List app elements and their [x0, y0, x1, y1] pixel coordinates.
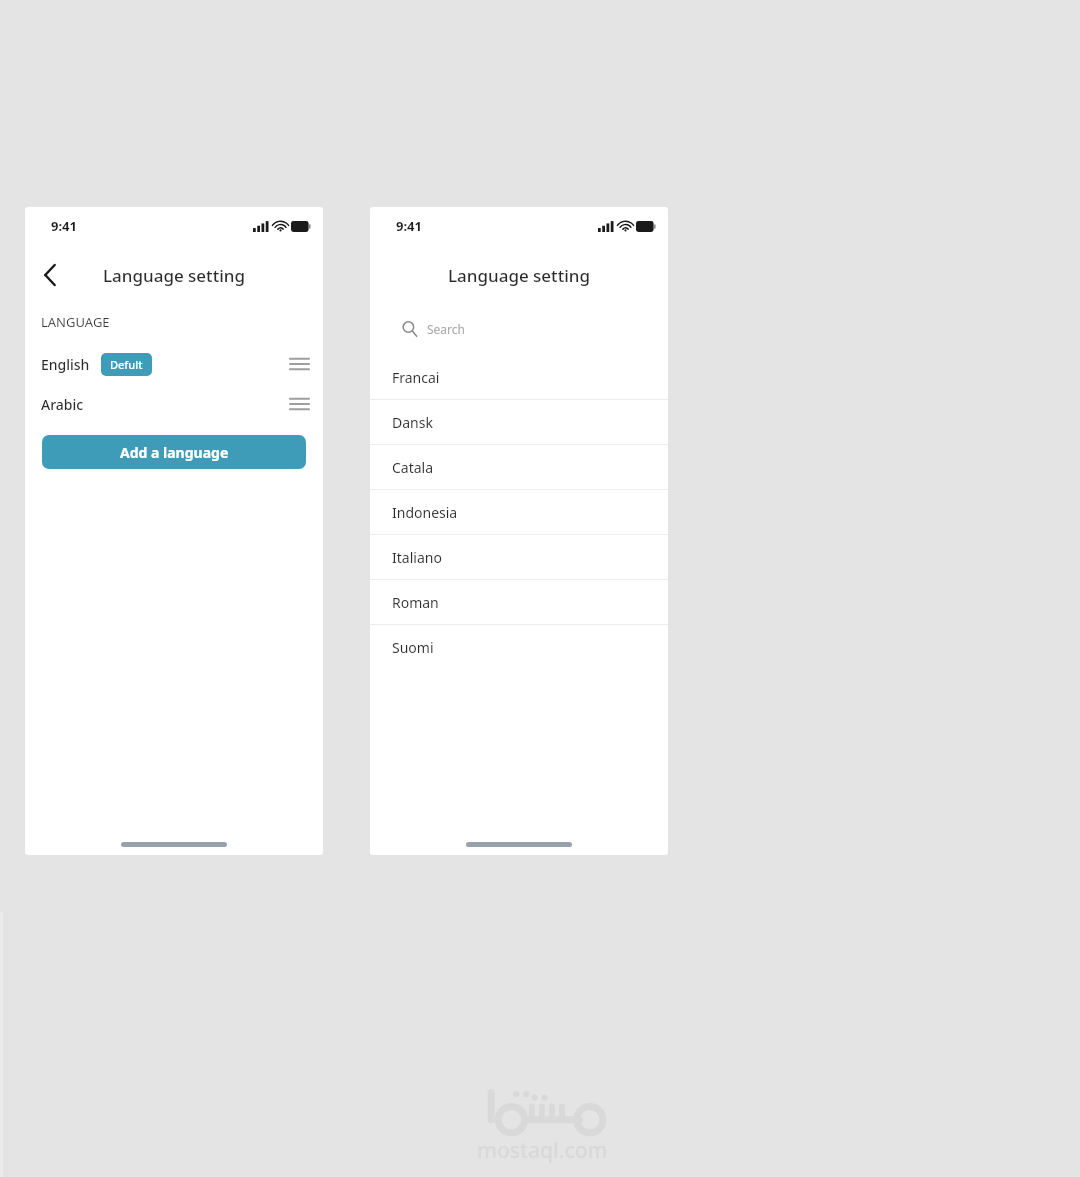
staticText: 9:41 — [51, 217, 77, 235]
staticText: Indonesia — [392, 503, 458, 522]
button[interactable]: Back — [33, 258, 67, 292]
staticText: Language setting — [448, 264, 590, 287]
staticText: Italiano — [392, 548, 442, 567]
button[interactable]: English — [25, 347, 323, 381]
button[interactable]: Arabic — [25, 387, 323, 421]
staticText: Search — [427, 321, 465, 337]
staticText: Suomi — [392, 638, 434, 657]
staticText: Add a language — [120, 443, 229, 462]
staticText: Arabic — [41, 395, 84, 414]
button[interactable]: Dansk — [370, 400, 668, 444]
button[interactable]: Indonesia — [370, 490, 668, 534]
staticText: LANGUAGE — [41, 313, 110, 331]
staticText: Defult — [110, 357, 143, 372]
button[interactable]: Italiano — [370, 535, 668, 579]
button[interactable]: Roman — [370, 580, 668, 624]
staticText: Francai — [392, 368, 440, 387]
button[interactable]: Reorder Arabic — [282, 387, 316, 421]
staticText: Catala — [392, 458, 434, 477]
button[interactable]: Search — [389, 311, 649, 347]
staticText: Roman — [392, 593, 439, 612]
button[interactable]: Catala — [370, 445, 668, 489]
button[interactable]: Reorder English — [282, 347, 316, 381]
button[interactable]: Suomi — [370, 625, 668, 669]
button[interactable]: Add a language — [42, 435, 306, 469]
staticText: English — [41, 355, 90, 374]
staticText: mostaql.com — [477, 1136, 608, 1165]
staticText: 9:41 — [396, 217, 422, 235]
button[interactable]: Francai — [370, 355, 668, 399]
staticText: Dansk — [392, 413, 433, 432]
staticText: Language setting — [103, 264, 245, 287]
